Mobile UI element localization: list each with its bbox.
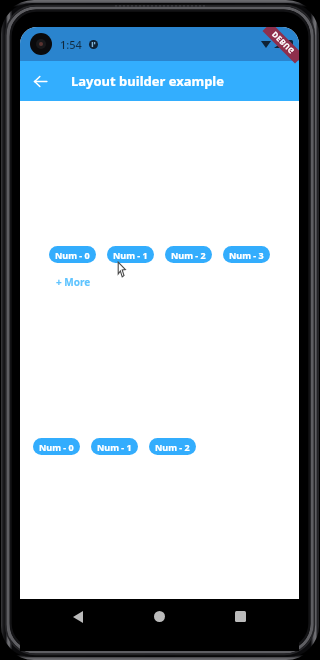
- button[interactable]: Back: [20, 61, 60, 101]
- button[interactable]: Num - 2: [165, 246, 212, 263]
- staticText: Num - 1: [97, 441, 132, 453]
- staticText: DEBUG: [270, 30, 296, 56]
- button[interactable]: + More: [56, 275, 91, 289]
- staticText: Num - 3: [229, 249, 264, 261]
- staticText: Num - 2: [155, 441, 190, 453]
- staticText: Layout builder example: [71, 72, 224, 90]
- button[interactable]: Num - 1: [91, 438, 138, 455]
- button[interactable]: Back: [60, 599, 96, 634]
- staticText: Num - 2: [171, 249, 206, 261]
- button[interactable]: Home: [141, 599, 177, 634]
- button[interactable]: Recent apps: [222, 599, 258, 634]
- staticText: Num - 1: [113, 249, 148, 261]
- button[interactable]: Num - 1: [107, 246, 154, 263]
- staticText: + More: [56, 275, 91, 289]
- button[interactable]: Num - 0: [33, 438, 80, 455]
- staticText: 1:54: [60, 37, 82, 52]
- button[interactable]: Num - 0: [49, 246, 96, 263]
- staticText: Num - 0: [55, 249, 90, 261]
- button[interactable]: Num - 2: [149, 438, 196, 455]
- button[interactable]: Num - 3: [223, 246, 270, 263]
- staticText: Num - 0: [39, 441, 74, 453]
